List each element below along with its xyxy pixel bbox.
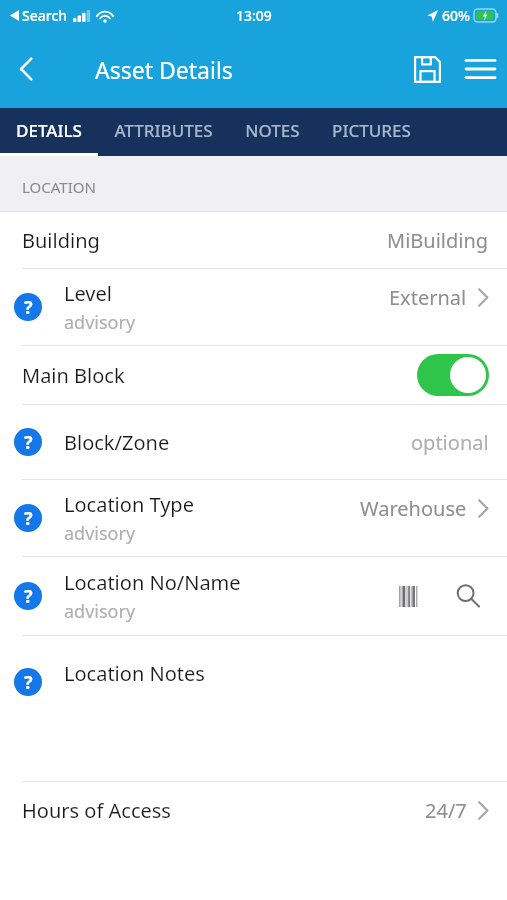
staticText: LOCATION: [22, 177, 96, 197]
staticText: ?: [24, 584, 33, 609]
button[interactable]: Hours of Access: [0, 782, 507, 838]
staticText: advisory: [64, 310, 136, 335]
staticText: PICTURES: [332, 119, 411, 142]
staticText: ?: [24, 295, 33, 320]
staticText: advisory: [64, 599, 136, 624]
staticText: 60%: [442, 6, 470, 25]
button[interactable]: Help: [14, 293, 42, 321]
staticText: ATTRIBUTES: [114, 119, 213, 142]
button[interactable]: Help: [0, 636, 507, 781]
staticText: Warehouse: [360, 495, 467, 522]
staticText: External: [389, 284, 467, 311]
staticText: ?: [24, 506, 33, 531]
staticText: 24/7: [425, 797, 467, 824]
staticText: ?: [24, 670, 33, 695]
button[interactable]: Main Block: [0, 346, 507, 404]
staticText: advisory: [64, 521, 136, 546]
staticText: Location No/Name: [64, 569, 241, 596]
button[interactable]: Save: [401, 43, 453, 95]
staticText: MiBuilding: [387, 227, 489, 254]
staticText: Search: [22, 6, 68, 25]
staticText: optional: [411, 429, 489, 456]
button[interactable]: Building: [0, 212, 507, 268]
button[interactable]: Main Block toggle, on: [417, 354, 489, 396]
staticText: Block/Zone: [64, 429, 170, 456]
button[interactable]: Help: [14, 428, 42, 456]
button[interactable]: NOTES: [229, 108, 316, 156]
button[interactable]: Help: [14, 668, 42, 696]
staticText: Level: [64, 280, 112, 307]
staticText: Building: [22, 227, 100, 254]
button[interactable]: Help: [0, 480, 507, 556]
button[interactable]: Scan barcode: [387, 575, 429, 617]
button[interactable]: Help: [0, 405, 507, 479]
staticText: ?: [24, 430, 33, 455]
staticText: Main Block: [22, 362, 125, 389]
staticText: Asset Details: [95, 54, 233, 85]
button[interactable]: ATTRIBUTES: [98, 108, 229, 156]
staticText: 13:09: [236, 6, 272, 25]
button[interactable]: Menu: [453, 42, 507, 96]
staticText: DETAILS: [16, 119, 82, 142]
button[interactable]: Search: [447, 575, 489, 617]
button[interactable]: DETAILS: [0, 108, 98, 156]
button[interactable]: Help: [14, 504, 42, 532]
button[interactable]: Help: [14, 582, 42, 610]
staticText: Hours of Access: [22, 797, 171, 824]
button[interactable]: Back: [0, 43, 52, 95]
button[interactable]: Help: [0, 557, 507, 635]
staticText: Location Notes: [64, 660, 205, 687]
button[interactable]: Help: [0, 269, 507, 345]
button[interactable]: PICTURES: [316, 108, 427, 156]
staticText: NOTES: [245, 119, 300, 142]
staticText: Location Type: [64, 491, 194, 518]
